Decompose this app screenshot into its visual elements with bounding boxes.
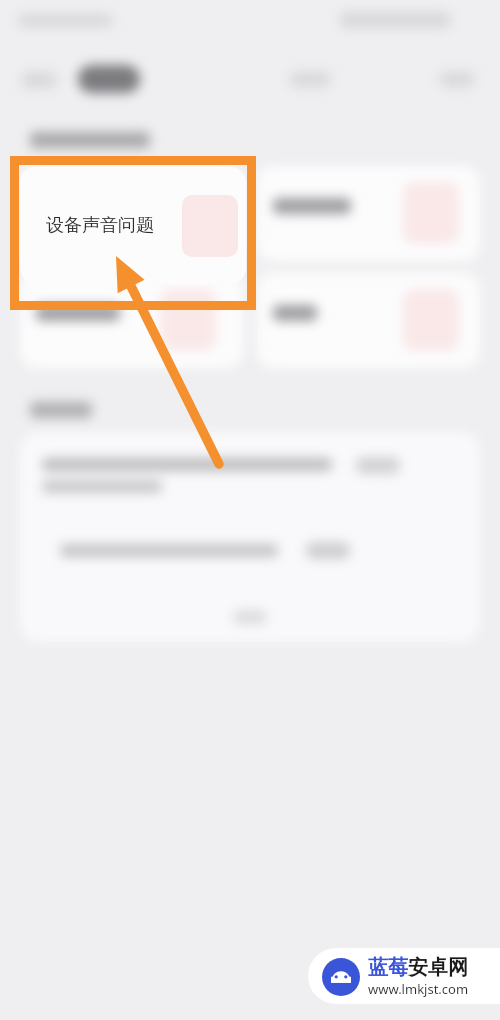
staticText: 蓝莓 [368, 955, 408, 980]
staticText: 设备声音问题 [46, 214, 154, 237]
button[interactable] [257, 166, 480, 261]
button[interactable] [257, 273, 480, 368]
button[interactable]: 设备声音问题 [20, 167, 246, 284]
other: Highlighted area [0, 0, 500, 1020]
button[interactable] [20, 273, 243, 368]
staticText: 安卓网 [408, 955, 468, 980]
button[interactable] [20, 166, 243, 261]
staticText: www.lmkjst.com [368, 980, 469, 998]
button[interactable]: 蓝莓安卓网 www.lmkjst.com [308, 948, 500, 1004]
